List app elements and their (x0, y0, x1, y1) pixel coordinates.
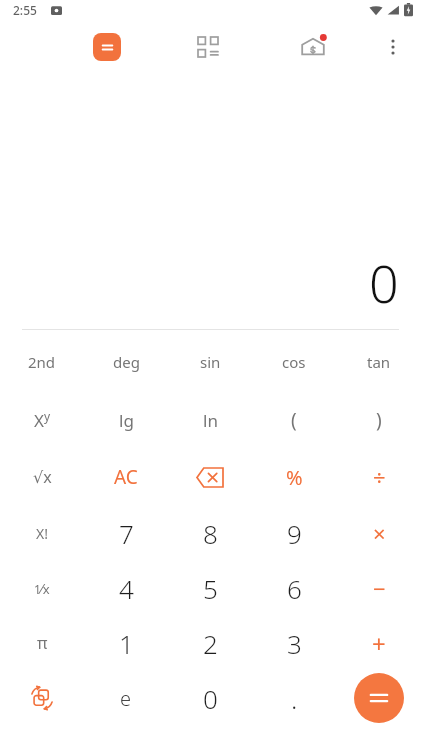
button[interactable]: AC (86, 450, 166, 504)
button[interactable]: cos (254, 335, 334, 389)
staticText: × (373, 518, 386, 548)
button[interactable]: ÷ (339, 450, 419, 504)
staticText: 6 (287, 571, 302, 606)
button[interactable]: 5 (170, 561, 250, 615)
button[interactable]: 4 (86, 561, 166, 615)
button[interactable]: Xy (2, 393, 82, 447)
button[interactable]: ) (339, 393, 419, 447)
staticText: 1⁄x (34, 579, 50, 598)
button[interactable]: ( (254, 393, 334, 447)
button[interactable]: Equals (339, 671, 419, 725)
staticText: ( (291, 407, 297, 433)
staticText: 2nd (28, 352, 56, 372)
button[interactable]: 2 (170, 616, 250, 670)
staticText: 7 (119, 516, 134, 551)
button[interactable]: tan (339, 335, 419, 389)
staticText: AC (114, 464, 138, 490)
staticText: 8 (203, 516, 218, 551)
staticText: e (120, 685, 132, 712)
staticText: cos (282, 352, 306, 372)
staticText: Xy (34, 408, 51, 432)
staticText: 3 (287, 626, 302, 661)
button[interactable]: % (254, 450, 334, 504)
button[interactable]: + (339, 616, 419, 670)
button[interactable]: lg (86, 393, 166, 447)
button[interactable]: √x (2, 450, 82, 504)
staticText: 0 (203, 681, 218, 716)
button[interactable]: 2nd (2, 335, 82, 389)
staticText: 2:55 (13, 2, 37, 18)
button[interactable]: 9 (254, 506, 334, 560)
button[interactable]: 6 (254, 561, 334, 615)
button[interactable]: deg (86, 335, 166, 389)
staticText: X! (36, 524, 48, 543)
staticText: + (372, 627, 386, 660)
button[interactable]: 3 (254, 616, 334, 670)
staticText: √x (33, 466, 52, 488)
staticText: − (373, 573, 386, 603)
button[interactable]: Calculator (93, 33, 121, 61)
staticText: 9 (287, 516, 302, 551)
staticText: 4 (119, 571, 134, 606)
button[interactable]: ln (170, 393, 250, 447)
staticText: 1 (119, 626, 134, 661)
staticText: ln (203, 409, 218, 432)
staticText: . (291, 681, 298, 716)
button[interactable]: sin (170, 335, 250, 389)
button[interactable]: X! (2, 506, 82, 560)
button[interactable]: Backspace (170, 450, 250, 504)
button[interactable]: More options (379, 33, 407, 61)
button[interactable]: 7 (86, 506, 166, 560)
staticText: ÷ (373, 462, 386, 492)
staticText: ) (376, 407, 382, 433)
button[interactable]: 1 (86, 616, 166, 670)
button[interactable]: . (254, 671, 334, 725)
button[interactable]: e (86, 671, 166, 725)
button[interactable]: Loan calculator (297, 30, 329, 62)
staticText: tan (367, 352, 391, 372)
button[interactable]: 8 (170, 506, 250, 560)
button[interactable]: Convert (2, 671, 82, 725)
button[interactable]: 1⁄x (2, 561, 82, 615)
staticText: 2 (203, 626, 218, 661)
button[interactable]: π (2, 616, 82, 670)
staticText: 5 (203, 571, 218, 606)
button[interactable]: × (339, 506, 419, 560)
staticText: deg (113, 352, 140, 372)
button[interactable]: Unit converter (195, 34, 221, 60)
staticText: sin (200, 352, 221, 372)
button[interactable]: − (339, 561, 419, 615)
staticText: % (286, 464, 303, 491)
staticText: π (37, 632, 48, 654)
staticText: 0 (369, 247, 399, 318)
button[interactable]: 0 (170, 671, 250, 725)
staticText: lg (119, 409, 134, 432)
